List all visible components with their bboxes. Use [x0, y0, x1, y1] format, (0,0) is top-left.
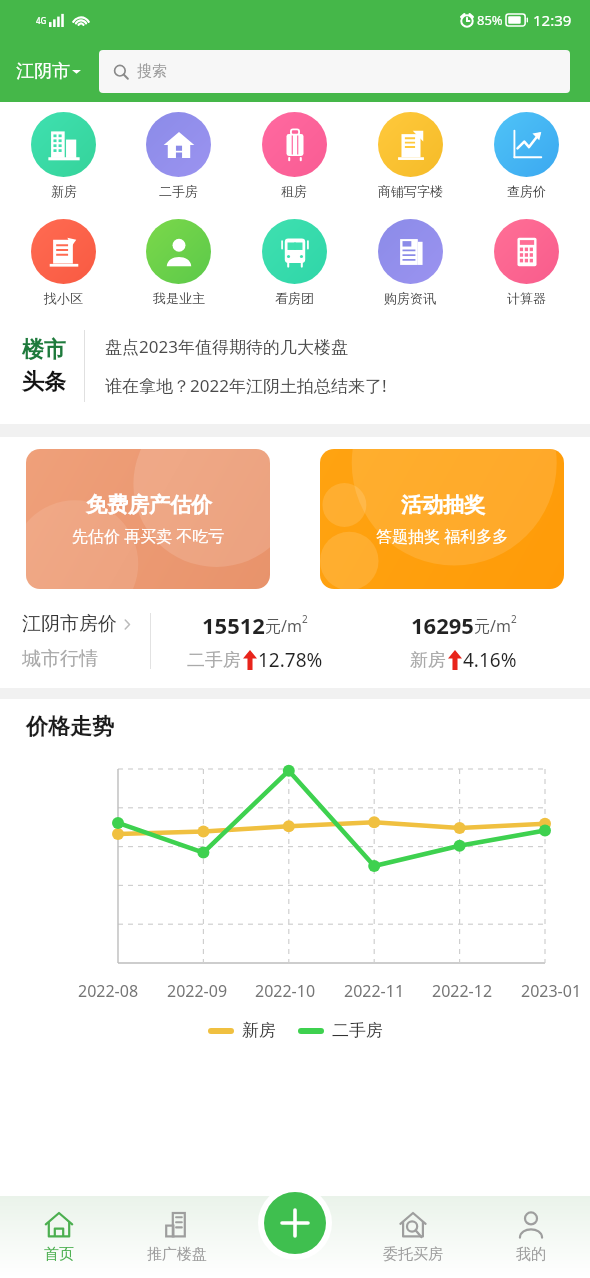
- staticText: 2: [511, 612, 517, 626]
- staticText: 4G: [36, 15, 47, 26]
- button[interactable]: 江阴市: [16, 54, 81, 89]
- button[interactable]: 楼市: [0, 312, 590, 420]
- staticText: 2022-12: [432, 980, 493, 1002]
- button[interactable]: 推广楼盘: [118, 1196, 236, 1278]
- staticText: 答题抽奖 福利多多: [376, 525, 509, 547]
- button[interactable]: 购房资讯: [352, 217, 468, 308]
- staticText: 免费房产估价: [86, 492, 212, 518]
- staticText: 新房: [410, 649, 446, 672]
- staticText: 江阴市房价: [22, 612, 117, 636]
- staticText: 购房资讯: [384, 290, 436, 306]
- staticText: 二手房: [187, 649, 241, 672]
- staticText: 租房: [281, 183, 307, 199]
- staticText: 二手房: [159, 183, 198, 199]
- staticText: 二手房: [332, 1020, 383, 1041]
- staticText: 元/m: [265, 615, 302, 637]
- staticText: 元/m: [474, 615, 511, 637]
- staticText: 85%: [477, 11, 503, 29]
- button[interactable]: 查房价: [468, 110, 584, 201]
- staticText: 江阴市: [16, 60, 70, 83]
- staticText: 12.78%: [258, 647, 323, 673]
- staticText: 我是业主: [153, 290, 205, 306]
- staticText: 查房价: [507, 183, 546, 199]
- staticText: 价格走势: [26, 713, 114, 741]
- staticText: 2023-01: [521, 980, 582, 1002]
- staticText: 看房团: [275, 290, 314, 306]
- staticText: 推广楼盘: [147, 1245, 207, 1264]
- staticText: 盘点2023年值得期待的几大楼盘: [105, 335, 348, 358]
- button[interactable]: 商铺写字楼: [352, 110, 468, 201]
- button[interactable]: 委托买房: [354, 1196, 472, 1278]
- staticText: 城市行情: [22, 647, 98, 671]
- button[interactable]: 活动抽奖: [320, 449, 564, 589]
- staticText: 头条: [22, 368, 66, 396]
- staticText: 楼市: [22, 336, 66, 364]
- button[interactable]: 二手房: [121, 110, 236, 201]
- button[interactable]: 首页: [0, 1196, 118, 1278]
- button[interactable]: 免费房产估价: [26, 449, 270, 589]
- staticText: 委托买房: [383, 1245, 443, 1264]
- staticText: 计算器: [507, 290, 546, 306]
- button[interactable]: 找小区: [6, 217, 121, 308]
- staticText: 2022-10: [255, 980, 316, 1002]
- staticText: 谁在拿地？2022年江阴土拍总结来了!: [105, 374, 387, 397]
- button[interactable]: 我的: [472, 1196, 590, 1278]
- button[interactable]: 租房: [236, 110, 352, 201]
- staticText: 16295: [411, 610, 474, 640]
- staticText: 活动抽奖: [401, 492, 485, 518]
- button[interactable]: 搜索: [99, 50, 570, 93]
- staticText: 2022-09: [167, 980, 228, 1002]
- staticText: 新房: [242, 1020, 276, 1041]
- staticText: 12:39: [533, 10, 572, 30]
- button[interactable]: 江阴市房价: [0, 599, 590, 683]
- button[interactable]: 我是业主: [121, 217, 236, 308]
- staticText: 搜索: [137, 62, 167, 81]
- staticText: 2: [302, 612, 308, 626]
- staticText: 商铺写字楼: [378, 183, 443, 199]
- staticText: 2022-11: [344, 980, 405, 1002]
- button[interactable]: 新房: [6, 110, 121, 201]
- button[interactable]: 看房团: [236, 217, 352, 308]
- staticText: 2022-08: [78, 980, 139, 1002]
- staticText: 15512: [202, 610, 265, 640]
- staticText: 4.16%: [463, 647, 517, 673]
- button[interactable]: 计算器: [468, 217, 584, 308]
- staticText: 找小区: [44, 290, 83, 306]
- staticText: 我的: [516, 1245, 546, 1264]
- staticText: 首页: [44, 1245, 74, 1264]
- staticText: 先估价 再买卖 不吃亏: [72, 525, 225, 547]
- staticText: 新房: [51, 183, 77, 199]
- button[interactable]: Add: [264, 1192, 326, 1254]
